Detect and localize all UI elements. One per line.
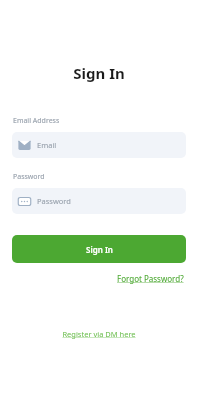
button[interactable]: Sign In (12, 235, 186, 263)
staticText: Forgot Password? (117, 273, 184, 284)
staticText: Email Address (13, 116, 60, 126)
staticText: Sign In (86, 244, 113, 255)
staticText: Register via DM here (62, 329, 136, 339)
staticText: Email (37, 140, 57, 150)
button[interactable]: Email (12, 132, 186, 158)
staticText: Password (13, 172, 45, 182)
button[interactable]: Forgot Password? (115, 271, 186, 286)
button[interactable]: Password (12, 188, 186, 214)
staticText: Password (37, 196, 71, 206)
button[interactable]: Register via DM here (58, 326, 140, 342)
other: Password (18, 195, 31, 208)
staticText: Sign In (73, 63, 125, 83)
other: Email (18, 139, 31, 152)
